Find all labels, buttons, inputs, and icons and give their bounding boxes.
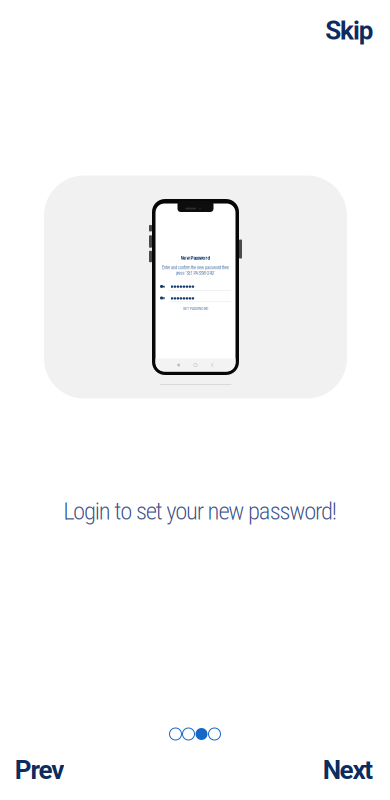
- staticText: ●●●●●●●●: [170, 284, 194, 288]
- staticText: Enter and confirm the new password then: [162, 265, 229, 270]
- staticText: New Password: [180, 255, 210, 261]
- button[interactable]: Prev: [2, 750, 76, 790]
- staticText: Login to set your new password!: [63, 496, 337, 525]
- staticText: SET PASSWORD: [183, 306, 208, 311]
- staticText: Prev: [15, 755, 64, 785]
- staticText: Skip: [325, 15, 374, 46]
- staticText: press 'SET PASSWORD': [175, 271, 215, 276]
- staticText: Next: [323, 755, 373, 785]
- button[interactable]: Skip: [312, 10, 386, 50]
- button[interactable]: Next: [311, 750, 385, 790]
- staticText: ●●●●●●●●: [170, 296, 194, 300]
